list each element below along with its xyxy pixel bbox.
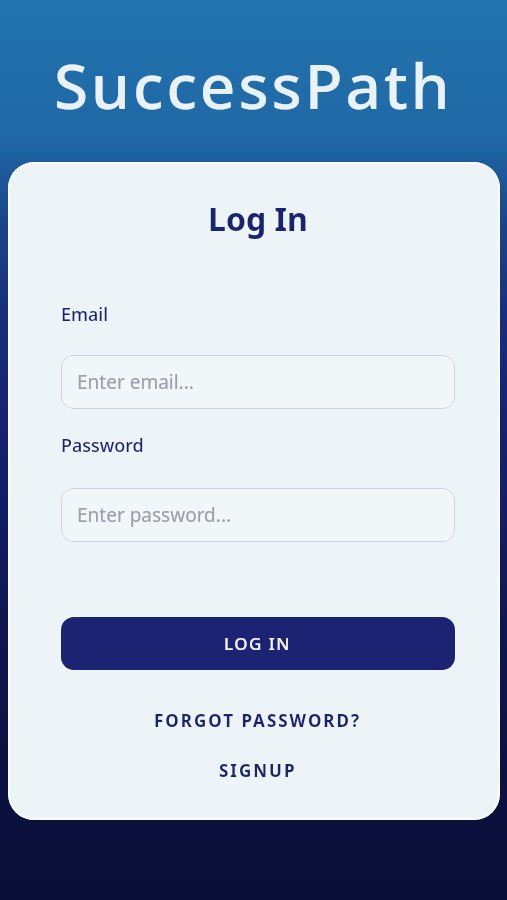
staticText: Enter password... [77,502,232,528]
button[interactable]: LOG IN [61,617,455,670]
button[interactable]: FORGOT PASSWORD? [146,701,370,740]
staticText: LOG IN [224,632,292,655]
staticText: FORGOT PASSWORD? [154,709,362,732]
button[interactable]: SIGNUP [211,751,305,790]
staticText: Email [61,302,109,327]
staticText: SuccessPath [54,43,453,127]
staticText: SIGNUP [219,759,297,782]
button[interactable]: Enter password... [61,488,455,542]
staticText: Enter email... [77,369,194,395]
staticText: Log In [208,197,308,241]
staticText: Password [61,433,144,458]
button[interactable]: Enter email... [61,355,455,409]
